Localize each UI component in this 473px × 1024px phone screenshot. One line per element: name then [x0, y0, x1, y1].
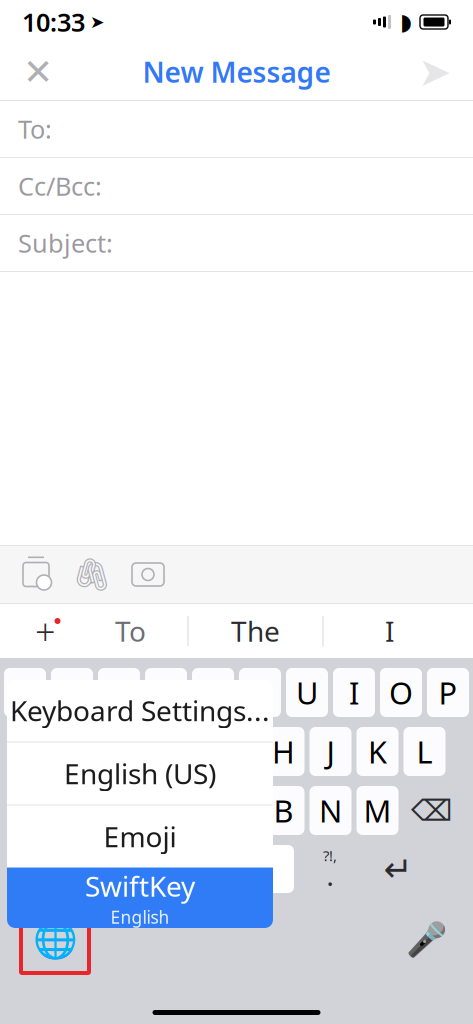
staticText: To [115, 612, 146, 650]
button[interactable]: J [309, 727, 351, 776]
staticText: ?!, [323, 846, 337, 865]
button[interactable]: I [323, 604, 455, 658]
button[interactable]: G [215, 727, 257, 776]
button[interactable]: Y [239, 668, 281, 717]
staticText: To: [18, 112, 52, 146]
button[interactable]: Attach file [64, 551, 120, 597]
staticText: F [181, 731, 197, 772]
button[interactable]: Schedule [8, 551, 64, 597]
staticText: V [227, 790, 245, 831]
staticText: O [389, 672, 413, 713]
staticText: . [327, 862, 333, 892]
button[interactable]: H [262, 727, 304, 776]
staticText: G [225, 731, 247, 772]
button[interactable]: T [192, 668, 234, 717]
staticText: Cc/Bcc: [18, 169, 102, 203]
staticText: ➤ [90, 12, 105, 32]
button[interactable]: SwiftKey [7, 867, 273, 928]
button[interactable]: Switch keyboard [21, 907, 89, 973]
staticText: I [385, 612, 394, 650]
staticText: W [57, 672, 86, 713]
staticText: J [326, 731, 334, 772]
button[interactable]: More [17, 604, 73, 658]
staticText: Subject: [18, 226, 113, 260]
button[interactable]: Close [8, 46, 68, 98]
staticText: S [87, 731, 104, 772]
button[interactable]: K [356, 727, 398, 776]
staticText: English (US) [64, 755, 216, 792]
button[interactable]: English (US) [7, 742, 273, 804]
staticText: 🖇 [71, 556, 112, 593]
staticText: U [296, 672, 318, 713]
staticText: X [133, 790, 151, 831]
staticText: Z [86, 790, 104, 831]
button[interactable]: Punctuation [299, 845, 361, 893]
staticText: 🌐 [32, 919, 77, 960]
button[interactable]: C [168, 786, 210, 835]
staticText: The [231, 612, 280, 650]
button[interactable]: R [145, 668, 187, 717]
staticText: L [416, 731, 432, 772]
button[interactable]: 123 [43, 845, 103, 893]
staticText: T [204, 672, 221, 713]
button[interactable]: W [51, 668, 93, 717]
button[interactable]: A [27, 727, 69, 776]
staticText: ◗ [400, 9, 412, 35]
staticText: 🎤 [406, 921, 448, 959]
staticText: ➤ [418, 49, 452, 95]
staticText: + [35, 607, 56, 655]
staticText: SwiftKey [85, 867, 195, 905]
staticText: N [319, 790, 342, 831]
button[interactable]: D [121, 727, 163, 776]
button[interactable]: Return [366, 845, 430, 893]
staticText: B [273, 790, 293, 831]
staticText: 123 [56, 856, 89, 882]
staticText: K [368, 731, 387, 772]
button[interactable]: P [427, 668, 469, 717]
button[interactable]: Camera [120, 551, 176, 597]
button[interactable]: Send [405, 46, 465, 98]
button[interactable]: M [356, 786, 398, 835]
button[interactable]: Dictation [399, 907, 455, 973]
button[interactable]: Keyboard Settings... [7, 679, 273, 741]
staticText: H [272, 731, 295, 772]
button[interactable]: B [262, 786, 304, 835]
staticText: ↵ [383, 849, 412, 889]
button[interactable]: Z [74, 786, 116, 835]
button[interactable]: X [121, 786, 163, 835]
button[interactable]: S [74, 727, 116, 776]
staticText: ✕ [23, 52, 53, 92]
staticText: D [131, 731, 153, 772]
button[interactable]: O [380, 668, 422, 717]
button[interactable]: Emoji [7, 805, 273, 867]
button[interactable]: E [98, 668, 140, 717]
button[interactable]: Q [4, 668, 46, 717]
button[interactable]: To [73, 604, 187, 658]
staticText: E [110, 672, 127, 713]
button[interactable]: U [286, 668, 328, 717]
button[interactable]: Space [108, 845, 294, 893]
button[interactable]: I [333, 668, 375, 717]
staticText: P [438, 672, 457, 713]
button[interactable]: Delete [403, 786, 459, 835]
button[interactable]: F [168, 727, 210, 776]
staticText: English [110, 906, 169, 929]
button[interactable]: L [403, 727, 445, 776]
button[interactable]: The [188, 604, 322, 658]
staticText: C [180, 790, 199, 831]
staticText: R [156, 672, 175, 713]
staticText: 10:33 [22, 5, 85, 39]
button[interactable]: N [309, 786, 351, 835]
staticText: Emoji [103, 818, 176, 855]
staticText: I [349, 672, 359, 713]
staticText: New Message [142, 53, 330, 91]
staticText: Keyboard Settings... [10, 692, 270, 729]
staticText: ⇧ [29, 794, 54, 827]
staticText: Q [13, 672, 37, 713]
staticText: M [363, 790, 391, 831]
staticText: ⌫ [411, 794, 452, 827]
staticText: A [38, 731, 58, 772]
